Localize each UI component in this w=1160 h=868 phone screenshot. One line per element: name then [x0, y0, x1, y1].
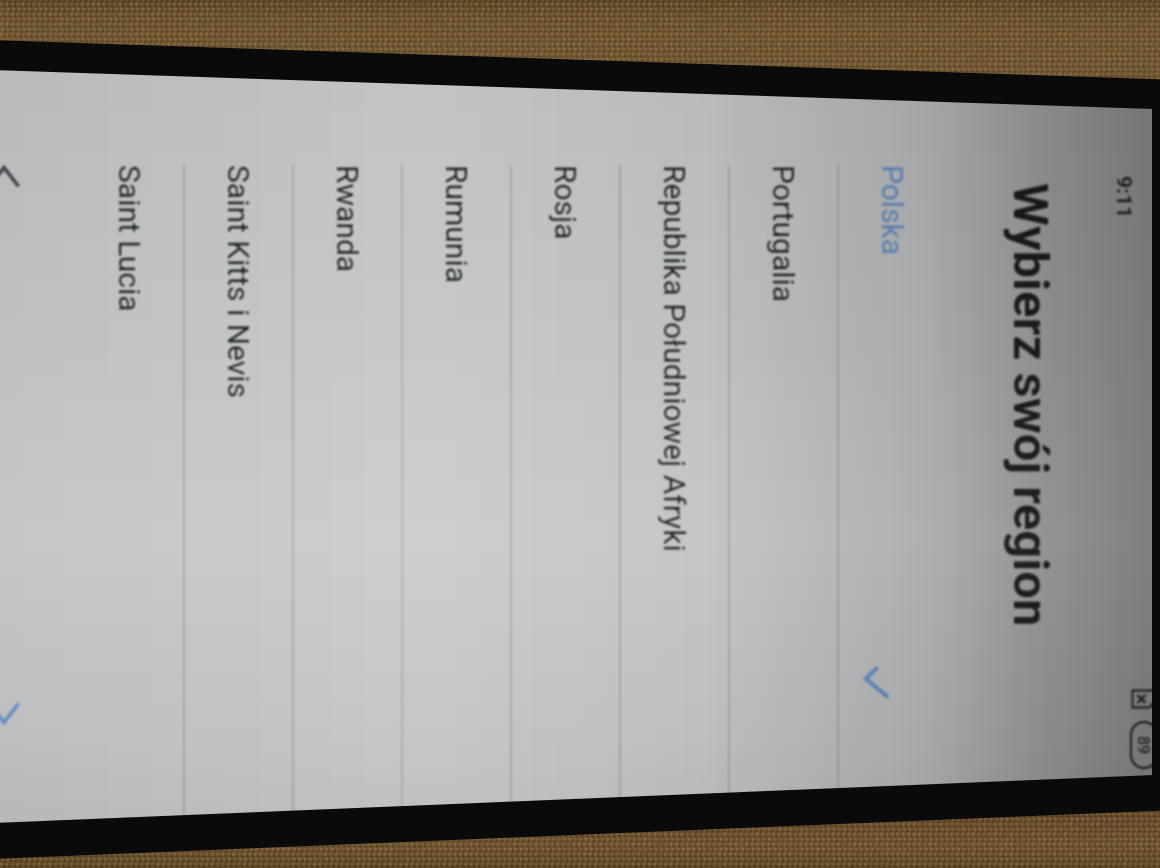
staticText: Portugalia — [766, 165, 801, 303]
button[interactable]: Polska — [839, 62, 946, 830]
button[interactable]: Saint Kitts i Nevis — [185, 62, 292, 830]
staticText: 89 — [1134, 736, 1152, 755]
staticText: Wybierz swój region — [1002, 183, 1059, 627]
button[interactable]: Rwanda — [294, 62, 401, 830]
staticText: Rosja — [548, 165, 583, 240]
staticText: Republika Południowej Afryki — [657, 165, 692, 552]
button[interactable]: Republika Południowej Afryki — [621, 62, 728, 830]
button[interactable]: Rumunia — [403, 62, 510, 830]
staticText: Saint Lucia — [112, 165, 147, 312]
button[interactable]: Portugalia — [730, 62, 837, 830]
staticText: Polska — [875, 165, 910, 256]
staticText: Saint Kitts i Nevis — [221, 165, 256, 399]
staticText: Rwanda — [330, 165, 365, 273]
button[interactable]: Rosja — [512, 62, 619, 830]
button[interactable]: Saint Lucia — [76, 62, 183, 830]
button[interactable]: Next — [0, 684, 33, 742]
staticText: Rumunia — [439, 165, 474, 284]
staticText: 9:11 — [1111, 176, 1136, 219]
button[interactable]: Back — [0, 148, 33, 206]
